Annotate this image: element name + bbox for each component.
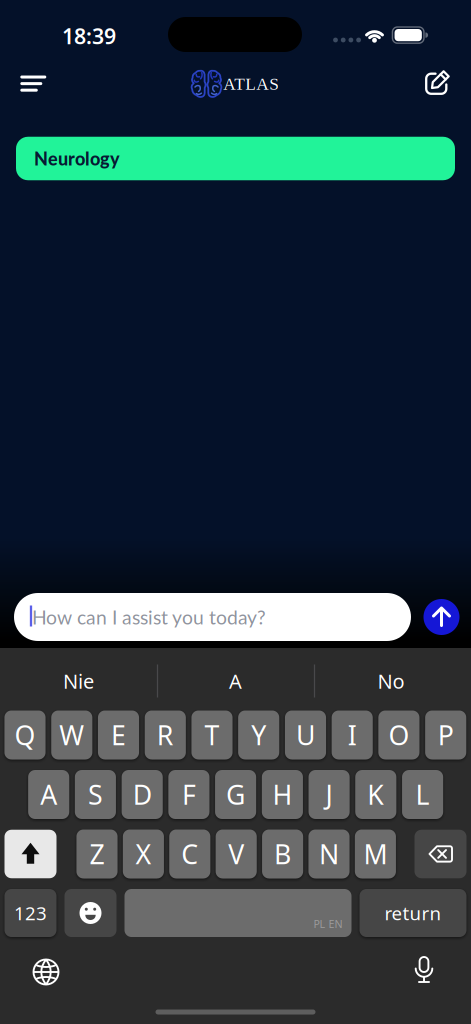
staticText: X xyxy=(135,836,151,872)
staticText: PL EN xyxy=(313,917,342,931)
button[interactable] xyxy=(32,958,60,986)
staticText: Z xyxy=(89,836,104,872)
staticText: 18:39 xyxy=(62,22,116,50)
button[interactable]: L xyxy=(402,770,443,819)
button[interactable]: F xyxy=(168,770,209,819)
button[interactable] xyxy=(64,889,116,937)
button[interactable]: S xyxy=(75,770,116,819)
button[interactable]: H xyxy=(262,770,303,819)
staticText: A xyxy=(40,777,57,812)
button[interactable]: Y xyxy=(238,710,279,759)
staticText: Q xyxy=(14,717,35,753)
button[interactable] xyxy=(423,599,459,635)
button[interactable]: How can I assist you today? xyxy=(14,593,411,641)
button[interactable]: I xyxy=(332,710,373,759)
button[interactable] xyxy=(411,957,437,985)
staticText: K xyxy=(367,777,384,812)
staticText: S xyxy=(88,777,103,812)
button[interactable]: E xyxy=(98,710,139,759)
button[interactable]: Neurology xyxy=(16,137,455,180)
staticText: H xyxy=(272,777,292,812)
staticText: W xyxy=(59,717,84,753)
button[interactable]: C xyxy=(169,829,210,878)
button[interactable] xyxy=(414,830,466,878)
staticText: M xyxy=(363,836,387,872)
button[interactable]: R xyxy=(145,710,186,759)
staticText: 123 xyxy=(14,901,47,925)
staticText: J xyxy=(326,777,333,812)
button[interactable]: PL EN xyxy=(124,889,351,937)
button[interactable] xyxy=(425,72,450,95)
staticText: E xyxy=(111,717,126,753)
staticText: R xyxy=(157,717,174,753)
staticText: T xyxy=(204,717,219,753)
button[interactable] xyxy=(20,75,46,93)
staticText: return xyxy=(384,901,441,925)
staticText: Y xyxy=(251,717,266,753)
button[interactable]: W xyxy=(51,710,92,759)
button[interactable]: Nie xyxy=(8,659,148,703)
button[interactable]: T xyxy=(191,710,232,759)
staticText: U xyxy=(296,717,315,753)
staticText: No xyxy=(377,668,404,694)
staticText: G xyxy=(226,777,245,812)
button[interactable]: X xyxy=(123,829,164,878)
button[interactable]: return xyxy=(359,889,466,937)
button[interactable]: K xyxy=(355,770,396,819)
staticText: Nie xyxy=(63,668,94,694)
button[interactable] xyxy=(4,830,56,878)
button[interactable]: B xyxy=(262,829,303,878)
staticText: How can I assist you today? xyxy=(32,605,266,629)
staticText: ATLAS xyxy=(223,74,279,93)
staticText: I xyxy=(348,717,357,753)
staticText: L xyxy=(416,777,430,812)
button[interactable]: J xyxy=(309,770,350,819)
button[interactable]: V xyxy=(216,829,257,878)
staticText: O xyxy=(388,717,409,753)
staticText: C xyxy=(181,836,198,872)
button[interactable]: P xyxy=(425,710,466,759)
staticText: N xyxy=(319,836,339,872)
button[interactable]: A xyxy=(28,770,69,819)
staticText: A xyxy=(229,668,242,694)
button[interactable]: D xyxy=(122,770,163,819)
button[interactable]: N xyxy=(308,829,349,878)
staticText: F xyxy=(182,777,196,812)
staticText: V xyxy=(228,836,244,872)
button[interactable]: G xyxy=(215,770,256,819)
button[interactable]: U xyxy=(285,710,326,759)
button[interactable]: 123 xyxy=(4,889,56,937)
button[interactable]: Z xyxy=(76,829,118,878)
button[interactable]: Q xyxy=(4,710,45,759)
staticText: B xyxy=(274,836,291,872)
button[interactable]: M xyxy=(355,829,396,878)
button[interactable]: O xyxy=(378,710,419,759)
staticText: Neurology xyxy=(34,148,120,169)
staticText: D xyxy=(133,777,152,812)
button[interactable]: A xyxy=(165,659,305,703)
staticText: P xyxy=(438,717,454,753)
button[interactable]: No xyxy=(321,659,461,703)
